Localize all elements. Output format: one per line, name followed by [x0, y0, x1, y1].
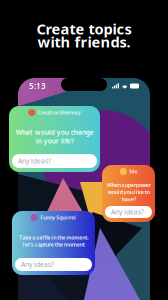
staticText: 5:13 [29, 81, 46, 91]
staticText: Any ideas? [18, 157, 51, 165]
staticText: Any ideas? [111, 208, 144, 216]
staticText: When superpower would you like to have? [106, 181, 150, 203]
staticText: Create topics [36, 19, 131, 38]
staticText: Me [129, 168, 137, 175]
staticText: Any ideas? [21, 260, 54, 269]
staticText: What would you change in your life? [15, 128, 93, 145]
staticText: Take a selfie in the moment, let's captu… [19, 234, 88, 248]
staticText: Funny Squirrel [40, 214, 76, 221]
staticText: Creative Memory [38, 109, 81, 116]
staticText: with friends. [37, 32, 130, 51]
